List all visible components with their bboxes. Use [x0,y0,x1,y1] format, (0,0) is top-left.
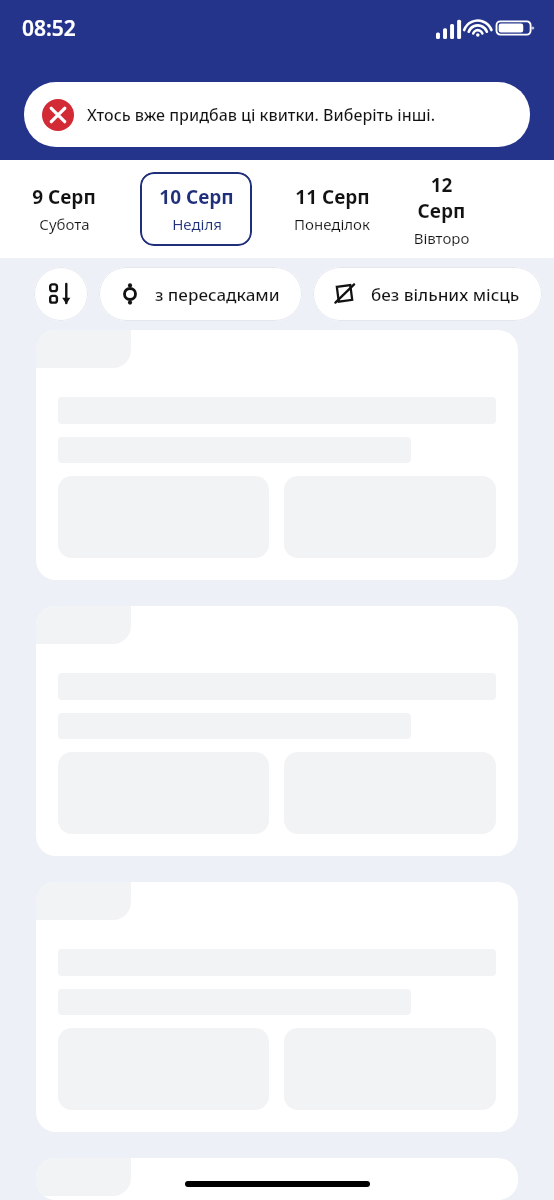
staticText: Вівторок [411,228,472,246]
staticText: 08:52 [22,14,76,43]
staticText: з пересадками [155,283,280,306]
staticText: без вільних місць [371,283,520,306]
button[interactable]: 11 Серп [264,172,399,246]
button[interactable]: 9 Серп [0,172,128,246]
staticText: 11 Серп [295,184,370,210]
staticText: 10 Серп [159,184,234,210]
staticText: 9 Серп [32,184,96,210]
staticText: 12 Серп [411,172,472,224]
button[interactable]: з пересадками [99,267,302,321]
staticText: Понеділок [294,214,370,234]
staticText: Субота [39,214,90,234]
button[interactable]: Хтось вже придбав ці квитки. Виберіть ін… [24,82,530,147]
staticText: Неділя [172,214,222,234]
button[interactable]: 12 Серп [411,172,472,246]
button[interactable]: Сортувати [34,267,88,321]
button[interactable]: без вільних місць [313,267,542,321]
button[interactable]: 10 Серп [140,172,252,246]
staticText: Хтось вже придбав ці квитки. Виберіть ін… [87,104,436,126]
